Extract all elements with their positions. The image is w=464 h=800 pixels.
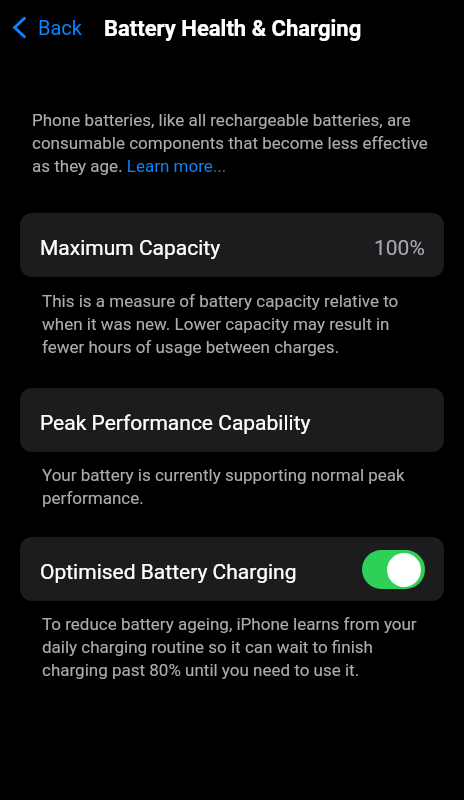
button[interactable]: Back <box>13 12 90 43</box>
button[interactable]: Optimised Battery Charging toggle <box>362 550 425 589</box>
button[interactable]: Peak Performance Capability <box>20 388 444 452</box>
button[interactable]: Optimised Battery Charging <box>20 537 444 601</box>
other: Back <box>13 17 26 38</box>
staticText: Maximum Capacity <box>40 236 221 261</box>
staticText: To reduce battery ageing, iPhone learns … <box>42 612 422 681</box>
button[interactable]: Maximum Capacity <box>20 213 444 277</box>
staticText: Phone batteries, like all rechargeable b… <box>32 108 432 177</box>
staticText: 100% <box>374 236 425 261</box>
staticText: Your battery is currently supporting nor… <box>42 463 422 509</box>
staticText: Back <box>38 16 82 39</box>
staticText: Battery Health & Charging <box>104 16 362 42</box>
staticText: This is a measure of battery capacity re… <box>42 289 422 358</box>
staticText: Peak Performance Capability <box>40 411 311 436</box>
staticText: Optimised Battery Charging <box>40 560 297 585</box>
